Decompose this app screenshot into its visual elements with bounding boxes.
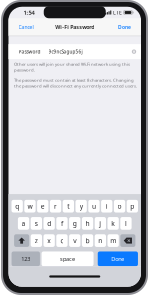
staticText: t <box>67 202 69 211</box>
staticText: q <box>15 202 19 211</box>
staticText: c <box>60 236 63 245</box>
button[interactable]: s <box>31 217 42 230</box>
button[interactable]: u <box>88 200 100 213</box>
staticText: u <box>92 202 96 211</box>
staticText: y <box>80 202 83 211</box>
staticText: w <box>27 202 32 211</box>
button[interactable]: c <box>56 234 68 247</box>
staticText: k <box>111 219 115 228</box>
button[interactable]: p <box>127 200 138 213</box>
button[interactable]: o <box>114 200 125 213</box>
staticText: Other users will join your shared Wi-Fi … <box>14 61 130 73</box>
button[interactable]: d <box>43 217 55 230</box>
button[interactable]: t <box>63 200 74 213</box>
staticText: n <box>98 236 102 245</box>
button[interactable]: Shift <box>14 234 29 247</box>
button[interactable]: r <box>50 200 61 213</box>
button[interactable]: Delete <box>120 234 135 247</box>
staticText: 123 <box>21 255 30 263</box>
staticText: v <box>73 236 76 245</box>
staticText: g <box>73 219 77 228</box>
button[interactable]: m <box>107 234 119 247</box>
button[interactable]: v <box>69 234 80 247</box>
staticText: h <box>86 219 90 228</box>
staticText: o <box>118 202 122 211</box>
button[interactable]: k <box>107 217 119 230</box>
staticText: s <box>35 219 38 228</box>
staticText: 1:54 <box>23 9 34 16</box>
button[interactable]: b <box>82 234 93 247</box>
staticText: LTE <box>113 9 122 16</box>
staticText: Wi-Fi Password <box>55 23 94 31</box>
staticText: i <box>106 202 108 211</box>
button[interactable]: j <box>95 217 106 230</box>
button[interactable]: i <box>101 200 112 213</box>
staticText: The password must contain at least 8 cha… <box>14 77 137 89</box>
button[interactable]: n <box>95 234 106 247</box>
staticText: x <box>47 236 51 245</box>
button[interactable]: l <box>120 217 132 230</box>
button[interactable]: f <box>56 217 68 230</box>
button[interactable]: space <box>41 251 93 266</box>
staticText: Done <box>111 255 124 263</box>
staticText: e <box>41 202 45 211</box>
button[interactable]: Cancel <box>8 20 37 34</box>
staticText: b <box>86 236 90 245</box>
staticText: p <box>130 202 134 211</box>
button[interactable]: q <box>11 200 23 213</box>
button[interactable]: Clear text <box>128 44 140 59</box>
staticText: l <box>125 219 127 228</box>
staticText: Done <box>118 24 131 30</box>
button[interactable]: h <box>82 217 93 230</box>
button[interactable]: 123 <box>11 251 40 266</box>
button[interactable]: x <box>43 234 55 247</box>
staticText: space <box>60 255 75 263</box>
staticText: f <box>61 219 63 228</box>
button[interactable]: g <box>69 217 80 230</box>
button[interactable]: e <box>37 200 48 213</box>
staticText: m <box>110 236 116 245</box>
button[interactable]: y <box>75 200 87 213</box>
button[interactable]: w <box>24 200 36 213</box>
staticText: z <box>35 236 38 245</box>
staticText: r <box>54 202 57 211</box>
button[interactable]: z <box>31 234 42 247</box>
staticText: 9c9ncSagup56j <box>48 49 82 55</box>
staticText: j <box>99 219 101 228</box>
staticText: Password <box>18 48 40 55</box>
button[interactable]: Done <box>98 251 138 266</box>
button[interactable]: a <box>18 217 29 230</box>
staticText: a <box>22 219 26 228</box>
staticText: Cancel <box>18 24 33 30</box>
button[interactable]: Done <box>114 20 141 34</box>
staticText: d <box>47 219 51 228</box>
